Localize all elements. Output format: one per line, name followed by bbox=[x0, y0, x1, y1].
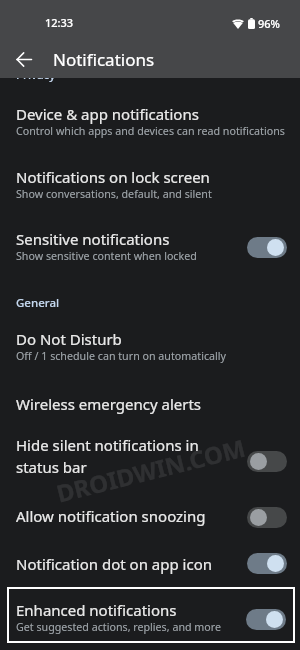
button[interactable]: Do Not Disturb bbox=[0, 329, 300, 387]
staticText: Enhanced notifications bbox=[16, 600, 177, 620]
staticText: DROIDWIN.COM bbox=[53, 431, 247, 503]
button[interactable]: Notifications on lock screen bbox=[0, 167, 300, 225]
button[interactable]: Enhanced notifications bbox=[7, 587, 295, 643]
staticText: Privacy bbox=[16, 67, 56, 83]
button[interactable]: Switch on bbox=[246, 609, 286, 630]
staticText: Show sensitive content when locked bbox=[16, 249, 197, 264]
staticText: Wireless emergency alerts bbox=[16, 394, 202, 414]
button[interactable]: Hide silent notifications in status bar bbox=[0, 435, 300, 497]
button[interactable]: Notification dot on app icon bbox=[0, 554, 300, 598]
staticText: Do Not Disturb bbox=[16, 329, 122, 349]
staticText: Off / 1 schedule can turn on automatical… bbox=[16, 349, 226, 364]
staticText: Allow notification snoozing bbox=[16, 506, 206, 526]
button[interactable]: Navigate up bbox=[9, 45, 37, 73]
button[interactable]: Device & app notifications bbox=[0, 104, 300, 162]
button[interactable]: Switch on bbox=[247, 553, 287, 574]
staticText: Sensitive notifications bbox=[16, 229, 170, 249]
staticText: Get suggested actions, replies, and more bbox=[16, 620, 222, 635]
staticText: Notifications on lock screen bbox=[16, 167, 210, 187]
staticText: Show conversations, default, and silent bbox=[16, 187, 212, 202]
button[interactable]: Switch off bbox=[247, 451, 287, 472]
staticText: Hide silent notifications in status bar bbox=[16, 435, 215, 478]
button[interactable]: Switch on bbox=[247, 237, 287, 258]
staticText: 96% bbox=[258, 16, 280, 31]
staticText: Notification dot on app icon bbox=[16, 554, 212, 574]
button[interactable]: Switch off bbox=[247, 507, 287, 528]
button[interactable]: Wireless emergency alerts bbox=[0, 394, 300, 434]
staticText: Notifications bbox=[53, 48, 155, 71]
staticText: Control which apps and devices can read … bbox=[16, 124, 285, 139]
staticText: General bbox=[16, 295, 60, 311]
staticText: Device & app notifications bbox=[16, 104, 199, 124]
staticText: 12:33 bbox=[45, 15, 74, 30]
button[interactable]: Allow notification snoozing bbox=[0, 506, 300, 550]
button[interactable]: Sensitive notifications bbox=[0, 229, 300, 287]
